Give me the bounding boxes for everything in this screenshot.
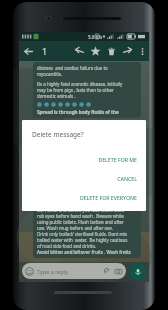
staticText: Delete message?: [32, 130, 84, 139]
staticText: Drink only boiled/ sterilised fluids. Do…: [37, 231, 128, 237]
button[interactable]: Star: [87, 41, 103, 61]
staticText: boiled water with water. Be highly cauti…: [37, 237, 128, 243]
staticText: rub eyes before hand wash . Beware while: [37, 213, 124, 219]
button[interactable]: Forward: [119, 41, 135, 61]
staticText: DELETE FOR EVERYONE: [79, 194, 137, 201]
staticText: Type a reply: [37, 268, 69, 275]
other: Emoji: [25, 267, 34, 276]
button[interactable]: DELETE FOR EVERYONE: [22, 193, 146, 202]
staticText: myocarditis.: [37, 71, 63, 77]
button[interactable]: Public- Hand wash with soap every time y…: [33, 198, 141, 258]
button[interactable]: 1: [37, 41, 53, 61]
button[interactable]: CANCEL: [22, 174, 146, 183]
button[interactable]: Emoji: [22, 263, 126, 279]
staticText: eat , drink and before you face wash. Do…: [37, 207, 125, 213]
staticText: Spread is through body fluids of the: [37, 109, 119, 115]
staticText: Avoid bitten and leftover fruits . Wash …: [37, 249, 131, 255]
button[interactable]: Voice message: [129, 263, 146, 280]
staticText: 1: [42, 45, 48, 57]
button[interactable]: Reply: [71, 41, 87, 61]
staticText: use. Wash mug before and after use.: [37, 225, 113, 231]
staticText: using public toilets. Flush before and a…: [37, 219, 124, 225]
button[interactable]: Back: [19, 41, 37, 61]
button[interactable]: More options: [135, 41, 149, 61]
button[interactable]: Attach: [102, 267, 111, 276]
staticText: of road side food and drinks.: [37, 243, 97, 249]
staticText: CANCEL: [117, 175, 137, 182]
staticText: 5.0 K/s: [88, 34, 103, 40]
staticText: distress and cardiac failure due to: [37, 65, 108, 71]
staticText: domestic animals .: [37, 93, 76, 99]
staticText: Its a highly fatal zoonotic disease, ini…: [37, 81, 123, 87]
button[interactable]: Delete: [103, 41, 119, 61]
button[interactable]: Camera: [114, 267, 123, 276]
button[interactable]: distress and cardiac failure due to: [33, 62, 141, 118]
staticText: may be from pigs , bats then to other: [37, 87, 114, 93]
button[interactable]: DELETE FOR ME: [22, 155, 146, 164]
staticText: DELETE FOR ME: [98, 156, 137, 163]
